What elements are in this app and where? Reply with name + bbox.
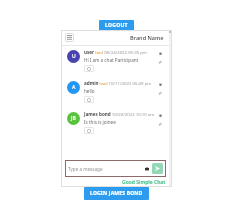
- staticText: Hi I am a chat Participant: [84, 57, 139, 63]
- button[interactable]: Attach: [143, 165, 150, 172]
- staticText: Brand Name: [130, 34, 164, 41]
- staticText: LOGIN JAMES BOND: [90, 190, 143, 197]
- button[interactable]: Type a message: [68, 160, 163, 177]
- button[interactable]: Send: [152, 163, 163, 174]
- button[interactable]: Add reaction: [84, 96, 94, 103]
- staticText: JB: [71, 115, 76, 122]
- staticText: A: [72, 84, 76, 91]
- button[interactable]: LOGIN JAMES BOND: [84, 187, 149, 200]
- button[interactable]: Menu: [65, 33, 74, 42]
- button[interactable]: Reply: [157, 59, 163, 65]
- button[interactable]: Delete: [157, 112, 163, 118]
- staticText: James bond 10/20/2022 10:10 am: [84, 111, 155, 117]
- button[interactable]: Good Simple Chat: [122, 179, 166, 186]
- staticText: LOGOUT: [105, 22, 128, 29]
- staticText: U: [72, 53, 76, 60]
- button[interactable]: LOGOUT: [99, 20, 134, 31]
- button[interactable]: Reply: [157, 90, 163, 96]
- staticText: Is this is joinee: [84, 119, 116, 125]
- staticText: hello: [84, 88, 95, 94]
- button[interactable]: Add reaction: [84, 127, 94, 134]
- staticText: user (on) 08/24/2022 05:35 pm: [84, 49, 147, 55]
- button[interactable]: Add reaction: [84, 65, 94, 72]
- staticText: Type a message: [68, 166, 143, 172]
- button[interactable]: Reply: [157, 121, 163, 127]
- staticText: admin (on) 10/11/2022 06:49 pm: [84, 80, 152, 86]
- button[interactable]: Delete: [157, 50, 163, 56]
- button[interactable]: Delete: [157, 81, 163, 87]
